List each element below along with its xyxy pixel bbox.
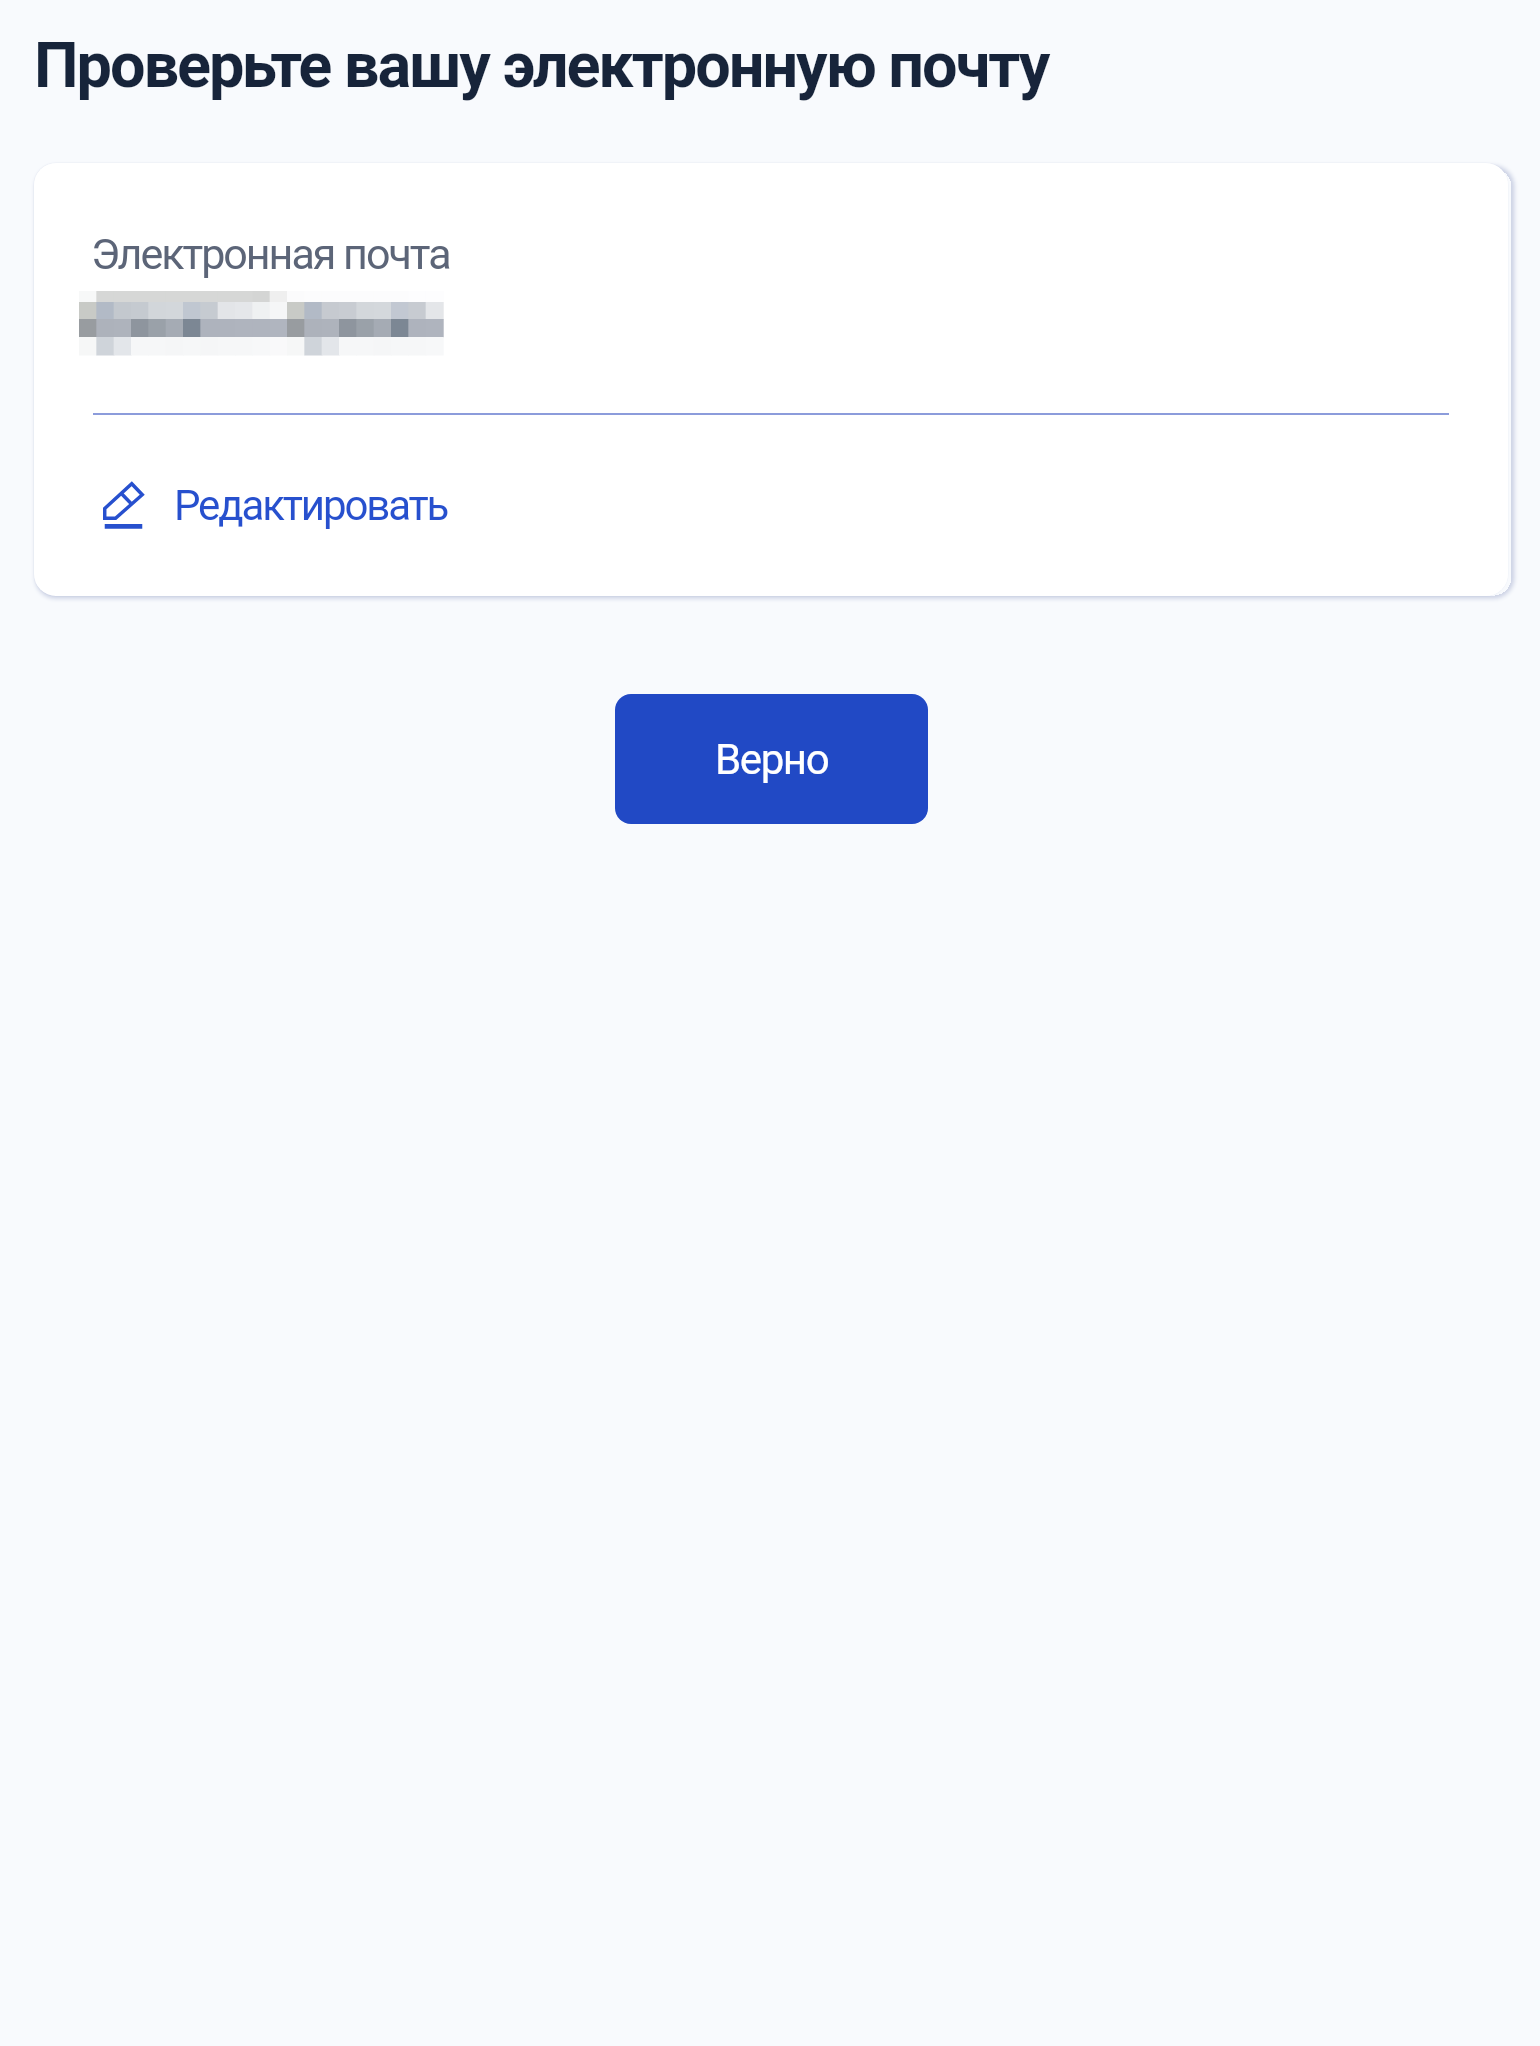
staticText: Верно	[715, 735, 829, 784]
staticText: Электронная почта	[91, 229, 450, 279]
button[interactable]: Редактировать	[95, 463, 448, 547]
staticText: Проверьте вашу электронную почту	[34, 29, 1049, 103]
button[interactable]: Верно	[615, 694, 928, 824]
staticText: Редактировать	[174, 481, 448, 530]
other: Редактировать	[103, 482, 144, 528]
